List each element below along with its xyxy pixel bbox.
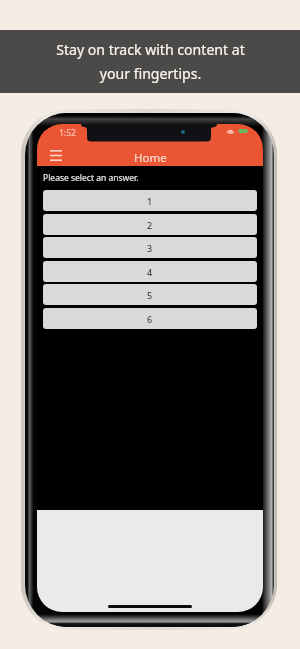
staticText: 2	[147, 219, 153, 231]
button[interactable]: 6	[43, 308, 257, 329]
button[interactable]: Menu	[45, 145, 65, 165]
staticText: 5	[147, 289, 153, 301]
staticText: Home	[134, 150, 167, 166]
button[interactable]: 1	[43, 190, 257, 211]
staticText: 1:52	[59, 127, 76, 139]
button[interactable]: 5	[43, 284, 257, 305]
button[interactable]: 4	[43, 261, 257, 282]
staticText: 3	[147, 242, 153, 254]
button[interactable]: 3	[43, 237, 257, 258]
staticText: 6	[147, 313, 153, 325]
staticText: Stay on track with content at your finge…	[56, 40, 245, 84]
staticText: 4	[147, 266, 153, 278]
button[interactable]: 2	[43, 214, 257, 235]
staticText: 1	[147, 195, 153, 207]
staticText: Please select an answer.	[43, 172, 139, 184]
